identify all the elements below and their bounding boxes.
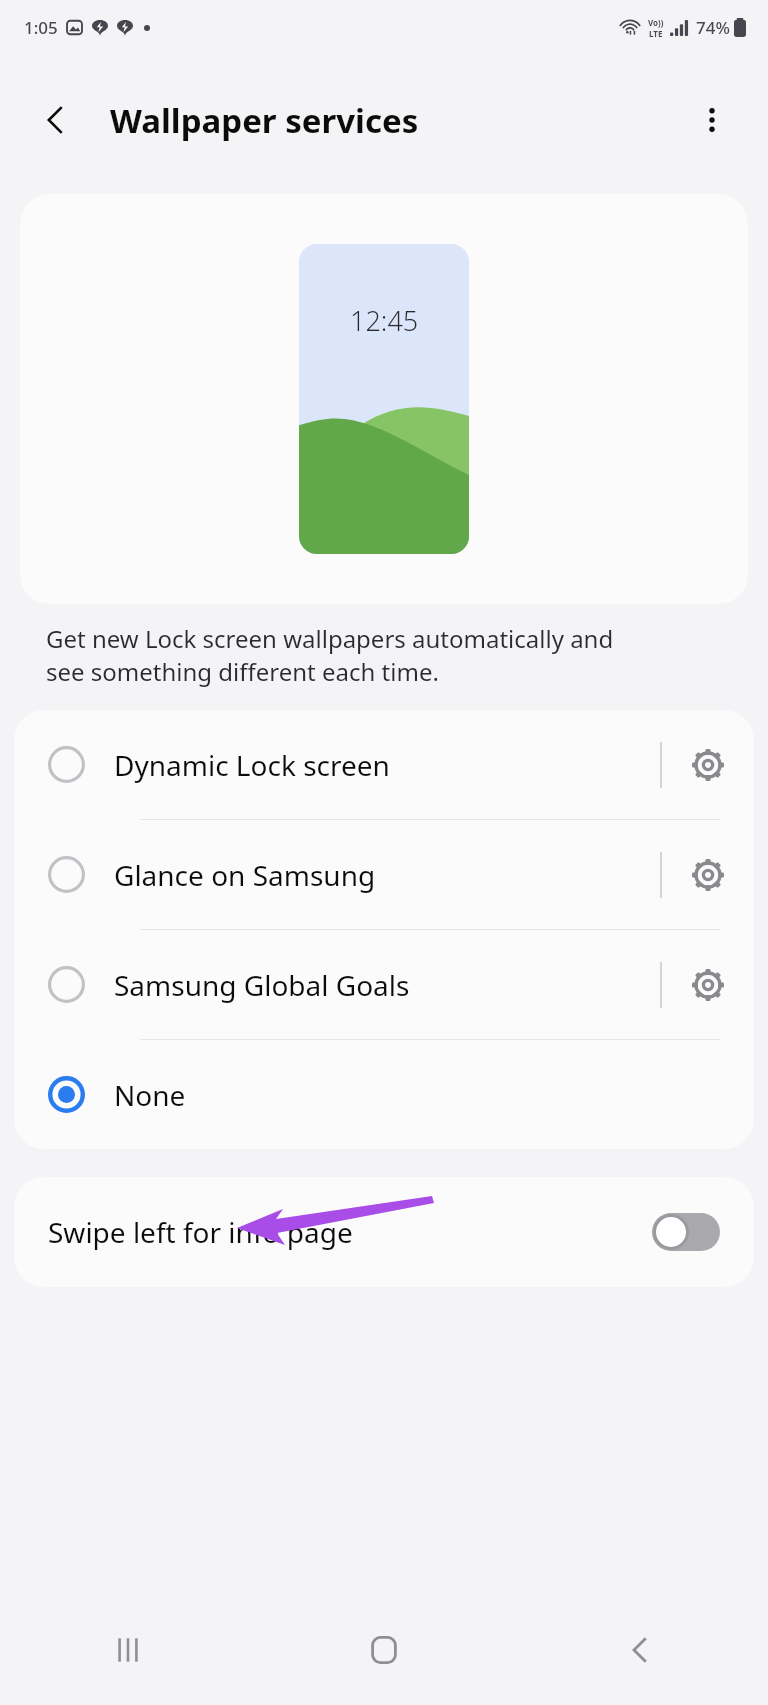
button[interactable]: Recent apps xyxy=(0,1595,256,1705)
button[interactable]: More options xyxy=(686,94,738,146)
staticText: see something different each time. xyxy=(46,655,439,688)
button[interactable]: Swipe left for info page xyxy=(14,1177,754,1287)
staticText: Wallpaper services xyxy=(110,98,419,143)
button[interactable]: Settings for Dynamic Lock screen xyxy=(662,710,754,819)
button[interactable]: Settings for Samsung Global Goals xyxy=(662,930,754,1039)
staticText: 74% xyxy=(696,16,730,39)
button[interactable]: Settings for Glance on Samsung xyxy=(662,820,754,929)
button[interactable]: Back xyxy=(30,94,82,146)
staticText: Samsung Global Goals xyxy=(114,966,410,1004)
button[interactable]: Glance on Samsung xyxy=(14,820,754,929)
staticText: LTE xyxy=(649,28,663,39)
staticText: Dynamic Lock screen xyxy=(114,746,390,784)
staticText: Glance on Samsung xyxy=(114,856,376,894)
staticText: Get new Lock screen wallpapers automatic… xyxy=(46,622,614,655)
button[interactable]: None xyxy=(14,1040,754,1149)
staticText: Vo)) xyxy=(648,17,664,28)
staticText: None xyxy=(114,1076,186,1114)
button[interactable]: Samsung Global Goals xyxy=(14,930,754,1039)
button[interactable]: Dynamic Lock screen xyxy=(14,710,754,819)
staticText: Swipe left for info page xyxy=(48,1213,353,1251)
button[interactable]: Back xyxy=(512,1595,768,1705)
staticText: 12:45 xyxy=(350,302,419,339)
button[interactable]: Home xyxy=(256,1595,512,1705)
staticText: 1:05 xyxy=(24,16,58,39)
